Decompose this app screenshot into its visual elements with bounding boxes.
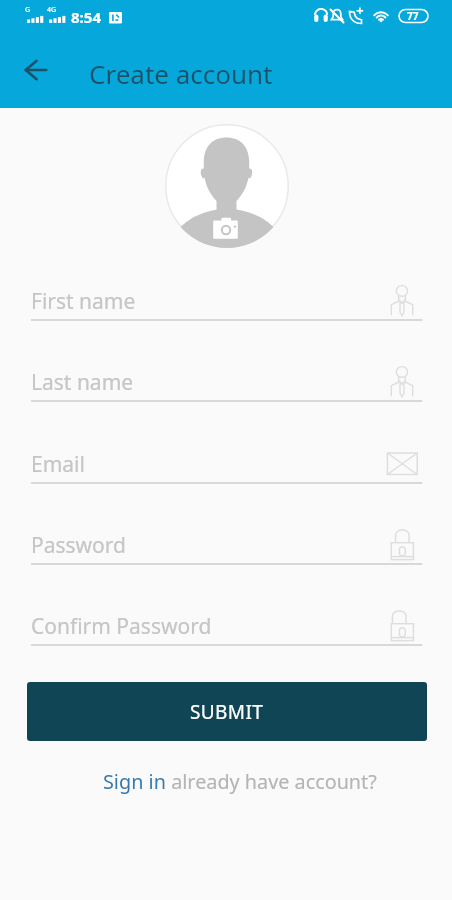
button[interactable]: First name: [27, 282, 425, 328]
staticText: already have account?: [166, 768, 377, 795]
button[interactable]: Email: [27, 445, 425, 491]
button[interactable]: Confirm Password: [27, 607, 425, 653]
staticText: Confirm Password: [31, 612, 212, 641]
staticText: First name: [31, 287, 136, 316]
staticText: SUBMIT: [190, 699, 264, 725]
staticText: Last name: [31, 368, 134, 397]
staticText: Create account: [89, 56, 273, 91]
staticText: G: [25, 5, 31, 15]
staticText: 77: [407, 9, 419, 23]
staticText: Password: [31, 531, 126, 560]
button[interactable]: Last name: [27, 363, 425, 409]
button[interactable]: Change profile photo: [165, 124, 289, 248]
staticText: 4G: [47, 5, 57, 15]
button[interactable]: Sign in: [103, 768, 166, 795]
button[interactable]: Password: [27, 526, 425, 572]
staticText: 8:54: [71, 7, 101, 27]
button[interactable]: Back: [12, 46, 60, 94]
button[interactable]: SUBMIT: [27, 682, 427, 741]
staticText: Email: [31, 450, 85, 479]
